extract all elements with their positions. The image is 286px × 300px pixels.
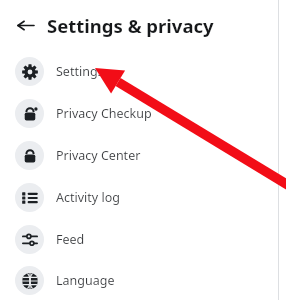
button[interactable]: Settings	[0, 50, 286, 92]
button[interactable]: Feed	[0, 218, 286, 260]
button[interactable]: Privacy Center	[0, 134, 286, 176]
button[interactable]: Language	[0, 260, 286, 300]
button[interactable]: Privacy Checkup	[0, 92, 286, 134]
staticText: Settings & privacy	[47, 13, 214, 38]
staticText: Activity log	[56, 189, 120, 206]
staticText: Privacy Checkup	[56, 105, 152, 122]
staticText: Settings	[56, 63, 104, 80]
button[interactable]: Back	[12, 12, 38, 38]
staticText: Privacy Center	[56, 147, 141, 164]
staticText: Feed	[56, 231, 85, 248]
staticText: Language	[56, 272, 115, 289]
button[interactable]: Activity log	[0, 176, 286, 218]
